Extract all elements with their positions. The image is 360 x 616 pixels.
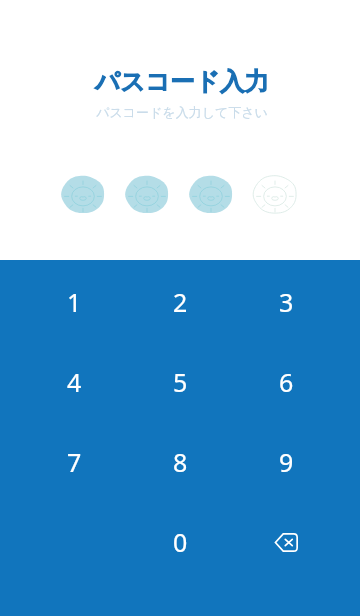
staticText: 2: [173, 285, 188, 319]
staticText: 5: [173, 365, 188, 399]
button[interactable]: 3: [233, 262, 339, 342]
other: Backspace: [274, 533, 298, 552]
staticText: 1: [67, 285, 82, 319]
button[interactable]: 0: [127, 502, 233, 582]
button[interactable]: 1: [21, 262, 127, 342]
staticText: 4: [67, 365, 82, 399]
button[interactable]: Backspace: [233, 502, 339, 582]
button[interactable]: 2: [127, 262, 233, 342]
button[interactable]: 9: [233, 422, 339, 502]
staticText: 6: [279, 365, 294, 399]
button[interactable]: 8: [127, 422, 233, 502]
staticText: パスコード入力: [95, 66, 269, 97]
staticText: 3: [279, 285, 294, 319]
button[interactable]: 7: [21, 422, 127, 502]
staticText: 7: [67, 445, 82, 479]
button[interactable]: 6: [233, 342, 339, 422]
staticText: 9: [279, 445, 294, 479]
staticText: 8: [173, 445, 188, 479]
button[interactable]: 5: [127, 342, 233, 422]
button[interactable]: 4: [21, 342, 127, 422]
staticText: パスコードを入力して下さい: [96, 104, 268, 120]
staticText: 0: [173, 525, 188, 559]
